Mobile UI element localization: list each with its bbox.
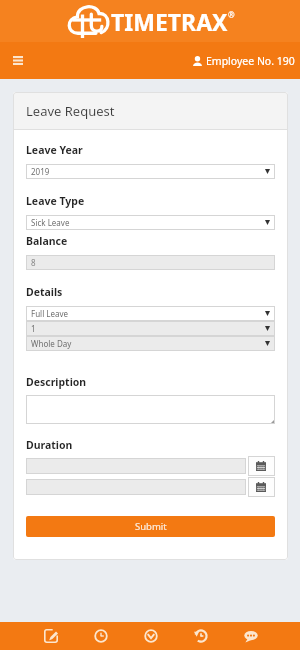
staticText: Leave Request <box>26 102 115 120</box>
button[interactable]: Date <box>26 458 246 474</box>
button[interactable]: Approvals <box>126 622 176 650</box>
staticText: 2019 <box>31 166 50 177</box>
button[interactable]: 1 <box>26 321 275 336</box>
staticText: Submit <box>135 520 167 533</box>
staticText: 8 <box>31 257 36 268</box>
button[interactable]: 2019 <box>26 164 275 179</box>
staticText: Leave Type <box>26 194 85 208</box>
staticText: Whole Day <box>31 338 72 349</box>
button[interactable]: Menu <box>0 42 35 79</box>
button[interactable]: Description <box>26 395 275 424</box>
staticText: Sick Leave <box>31 217 70 228</box>
staticText: Full Leave <box>31 308 69 319</box>
button[interactable]: Whole Day <box>26 336 275 351</box>
button[interactable]: Sick Leave <box>26 215 275 230</box>
button[interactable]: Pick date <box>248 456 275 476</box>
button[interactable]: Full Leave <box>26 306 275 321</box>
button[interactable]: Time clock <box>76 622 126 650</box>
button[interactable]: New request <box>26 622 76 650</box>
staticText: Balance <box>26 234 68 248</box>
staticText: TIMETRAX <box>111 6 228 37</box>
staticText: 1 <box>31 323 36 334</box>
staticText: ® <box>228 9 235 20</box>
button[interactable]: Date <box>26 479 246 495</box>
button[interactable]: Pick date <box>248 477 275 497</box>
staticText: Leave Year <box>26 143 83 157</box>
button[interactable]: Employee No. 190 <box>185 42 300 79</box>
staticText: Details <box>26 285 63 299</box>
staticText: Employee No. 190 <box>206 54 295 68</box>
staticText: Duration <box>26 438 73 452</box>
button[interactable]: Submit <box>26 516 275 537</box>
staticText: Description <box>26 375 87 389</box>
button[interactable]: History <box>176 622 226 650</box>
button[interactable]: Messages <box>226 622 276 650</box>
